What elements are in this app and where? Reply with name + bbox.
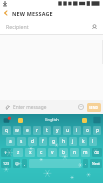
button[interactable]: u	[63, 126, 71, 135]
staticText: n	[73, 149, 76, 156]
button[interactable]: r	[33, 126, 41, 135]
staticText: NEW MESSAGE	[12, 10, 53, 17]
button[interactable]: b	[59, 148, 68, 157]
button[interactable]: Emoji suggestion	[16, 116, 24, 124]
staticText: SEND	[89, 105, 99, 110]
button[interactable]: e	[23, 126, 31, 135]
button[interactable]: v	[48, 148, 57, 157]
staticText: j	[72, 138, 74, 145]
button[interactable]: Emoji	[76, 102, 86, 112]
button[interactable]: Recipient	[0, 19, 103, 34]
button[interactable]: j	[69, 137, 77, 146]
button[interactable]: Period	[83, 159, 88, 168]
staticText: Next	[92, 161, 100, 166]
button[interactable]: c	[37, 148, 46, 157]
button[interactable]: Keyboard layout	[92, 115, 102, 125]
button[interactable]: Next	[90, 159, 102, 168]
button[interactable]: i	[73, 126, 81, 135]
button[interactable]: k	[79, 137, 87, 146]
staticText: English	[24, 117, 80, 122]
staticText: f	[42, 138, 44, 145]
staticText: k	[82, 138, 85, 145]
staticText: l	[92, 138, 94, 145]
button[interactable]: Add contact	[87, 20, 101, 34]
staticText: q	[5, 127, 8, 134]
staticText: y	[56, 127, 59, 134]
button[interactable]: w	[13, 126, 21, 135]
staticText: x	[29, 149, 32, 156]
staticText: m	[83, 149, 88, 156]
staticText: Recipient	[6, 23, 87, 30]
button[interactable]: Symbols	[1, 159, 11, 168]
button[interactable]: Space	[29, 159, 81, 168]
button[interactable]: o	[83, 126, 91, 135]
button[interactable]: d	[28, 137, 37, 146]
button[interactable]: x	[25, 148, 35, 157]
button[interactable]: m	[81, 148, 90, 157]
staticText: g	[52, 138, 55, 145]
staticText: w	[15, 127, 19, 134]
staticText: t	[46, 127, 48, 134]
staticText: e	[26, 127, 29, 134]
staticText: b	[62, 149, 65, 156]
button[interactable]: Attach	[2, 102, 13, 113]
button[interactable]: a	[6, 137, 15, 146]
button[interactable]: z	[13, 148, 23, 157]
button[interactable]: l	[89, 137, 97, 146]
staticText: h	[62, 138, 65, 145]
button[interactable]: f	[39, 137, 47, 146]
button[interactable]: p	[93, 126, 101, 135]
staticText: p	[96, 127, 99, 134]
button[interactable]: n	[70, 148, 79, 157]
button[interactable]: Comma	[22, 159, 27, 168]
button[interactable]: Emoji suggestion	[80, 116, 88, 124]
button[interactable]: Keyboard settings	[1, 115, 11, 125]
button[interactable]: SEND	[87, 103, 101, 112]
button[interactable]: g	[49, 137, 57, 146]
staticText: Enter message	[13, 104, 76, 111]
staticText: ,	[24, 161, 25, 166]
button[interactable]: Back	[0, 7, 12, 19]
staticText: a	[9, 138, 12, 145]
button[interactable]: Emoji	[13, 159, 20, 168]
staticText: v	[51, 149, 54, 156]
staticText: z	[17, 149, 20, 156]
staticText: s	[20, 138, 23, 145]
button[interactable]: s	[17, 137, 26, 146]
button[interactable]: Shift	[1, 148, 11, 157]
staticText: o	[86, 127, 89, 134]
button[interactable]: t	[43, 126, 51, 135]
staticText: ☺	[15, 162, 19, 166]
staticText: 123	[3, 161, 10, 166]
staticText: i	[76, 127, 78, 134]
staticText: ⌫	[94, 151, 100, 155]
button[interactable]: Backspace	[92, 148, 102, 157]
staticText: r	[36, 127, 38, 134]
staticText: .	[85, 161, 86, 166]
button[interactable]: q	[2, 126, 11, 135]
staticText: ⇧	[4, 151, 8, 155]
staticText: c	[40, 149, 43, 156]
staticText: d	[31, 138, 34, 145]
button[interactable]: y	[53, 126, 61, 135]
button[interactable]: h	[59, 137, 67, 146]
staticText: u	[66, 127, 69, 134]
